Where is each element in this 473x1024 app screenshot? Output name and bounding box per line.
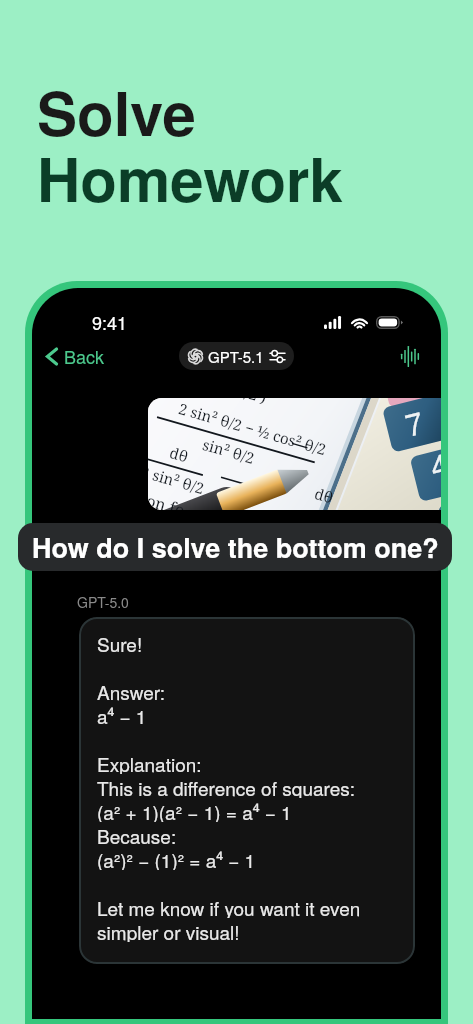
staticText: GPT-5.0 <box>77 592 129 612</box>
staticText: Back <box>64 343 105 369</box>
staticText: dθ <box>312 483 336 507</box>
button[interactable]: GPT-5.1 <box>179 342 294 370</box>
staticText: a⁴ − 1 <box>97 702 147 726</box>
staticText: (a² + 1)(a² − 1) = a⁴ − 1 <box>97 798 292 822</box>
staticText: GPT-5.1 <box>208 346 264 367</box>
button[interactable]: How do I solve the bottom one? <box>18 523 452 571</box>
staticText: How do I solve the bottom one? <box>32 528 439 567</box>
staticText: Because: <box>97 822 177 846</box>
staticText: sion fo <box>148 486 188 510</box>
staticText: (a²)² − (1)² = a⁴ − 1 <box>97 846 256 870</box>
staticText: sin² θ/2 <box>200 434 257 468</box>
staticText: Explanation: <box>97 750 202 774</box>
button[interactable]: Sure! <box>79 617 415 964</box>
button[interactable]: Back <box>32 339 113 373</box>
button[interactable]: Homework photo <box>148 398 441 510</box>
staticText: 9:41 <box>92 309 128 335</box>
staticText: 7 <box>400 398 428 445</box>
staticText: Sure! <box>97 630 143 654</box>
staticText: 2 sin² θ/2 <box>148 461 207 498</box>
button[interactable]: Voice mode <box>395 341 425 371</box>
staticText: /2 ) <box>242 398 269 407</box>
staticText: 2 sin² θ/2 − ½ cos² θ/2 <box>176 398 329 459</box>
staticText: dθ <box>167 442 191 466</box>
staticText: Solve Homework <box>37 68 343 220</box>
staticText: Let me know if you want it even <box>97 894 361 918</box>
staticText: simpler or visual! <box>97 918 240 942</box>
staticText: This is a difference of squares: <box>97 774 356 798</box>
staticText: 4 <box>425 440 441 487</box>
staticText: Answer: <box>97 678 166 702</box>
